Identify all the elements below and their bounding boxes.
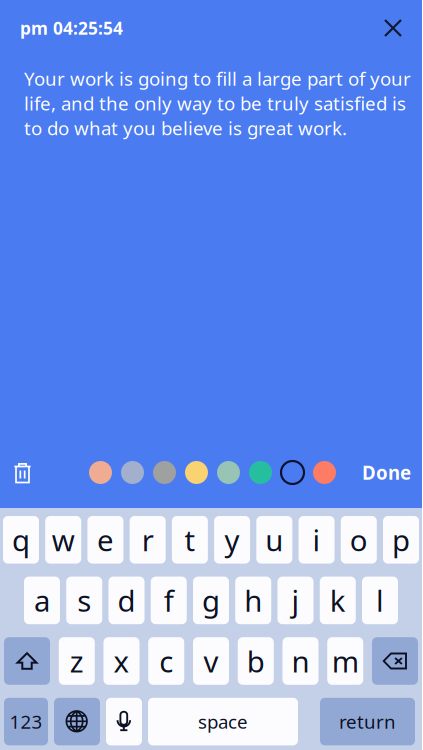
staticText: Your work is going to fill a large part …: [24, 66, 411, 140]
staticText: q: [12, 520, 30, 559]
button[interactable]: v: [193, 637, 229, 685]
staticText: h: [244, 581, 262, 620]
button[interactable]: d: [108, 577, 144, 624]
staticText: l: [376, 581, 384, 620]
staticText: o: [350, 520, 368, 559]
staticText: j: [291, 581, 299, 620]
staticText: z: [70, 641, 84, 680]
button[interactable]: w: [45, 516, 81, 564]
staticText: r: [142, 520, 154, 559]
button[interactable]: a: [24, 577, 60, 624]
button[interactable]: b: [238, 637, 274, 685]
staticText: i: [313, 520, 321, 559]
staticText: return: [339, 709, 396, 734]
button[interactable]: Colour 3: [153, 454, 176, 490]
button[interactable]: k: [320, 577, 356, 624]
staticText: y: [225, 520, 240, 559]
button[interactable]: h: [235, 577, 271, 624]
button[interactable]: Done: [362, 450, 411, 494]
button[interactable]: t: [172, 516, 208, 564]
staticText: 123: [9, 709, 42, 734]
staticText: d: [117, 581, 135, 620]
button[interactable]: r: [130, 516, 166, 564]
button[interactable]: Close: [371, 6, 415, 50]
button[interactable]: l: [362, 577, 398, 624]
staticText: s: [77, 581, 91, 620]
button[interactable]: z: [59, 637, 95, 685]
button[interactable]: return: [320, 698, 415, 745]
staticText: f: [164, 581, 174, 620]
button[interactable]: x: [103, 637, 139, 685]
button[interactable]: s: [66, 577, 102, 624]
staticText: g: [202, 581, 220, 620]
staticText: k: [330, 581, 346, 620]
button[interactable]: q: [3, 516, 39, 564]
staticText: a: [34, 581, 50, 620]
button[interactable]: m: [327, 637, 363, 685]
staticText: t: [184, 520, 195, 559]
button[interactable]: f: [151, 577, 187, 624]
button[interactable]: g: [193, 577, 229, 624]
button[interactable]: o: [341, 516, 377, 564]
button[interactable]: p: [383, 516, 419, 564]
staticText: b: [247, 641, 265, 680]
button[interactable]: Colour 2: [121, 454, 144, 490]
button[interactable]: u: [256, 516, 292, 564]
button[interactable]: Delete note: [1, 450, 44, 494]
button[interactable]: Shift: [4, 637, 50, 685]
button[interactable]: e: [87, 516, 123, 564]
staticText: n: [291, 641, 309, 680]
staticText: u: [265, 520, 283, 559]
button[interactable]: c: [148, 637, 184, 685]
button[interactable]: 123: [4, 698, 48, 745]
staticText: v: [203, 641, 218, 680]
staticText: e: [97, 520, 114, 559]
button[interactable]: Next keyboard: [54, 698, 100, 745]
staticText: Done: [362, 460, 411, 485]
button[interactable]: Delete: [372, 637, 418, 685]
button[interactable]: Colour 1: [89, 454, 112, 490]
button[interactable]: i: [299, 516, 335, 564]
button[interactable]: Colour 5: [217, 454, 240, 490]
button[interactable]: space: [148, 698, 298, 745]
staticText: space: [198, 709, 248, 734]
staticText: pm 04:25:54: [20, 16, 123, 39]
button[interactable]: Colour 6: [249, 454, 272, 490]
button[interactable]: n: [282, 637, 318, 685]
button[interactable]: y: [214, 516, 250, 564]
staticText: x: [113, 641, 129, 680]
staticText: c: [159, 641, 173, 680]
button[interactable]: Colour 8: [313, 454, 336, 490]
staticText: p: [392, 520, 410, 559]
staticText: w: [52, 520, 75, 559]
staticText: m: [332, 641, 359, 680]
button[interactable]: Colour 4: [185, 454, 208, 490]
button[interactable]: j: [277, 577, 313, 624]
button[interactable]: Dictate: [106, 698, 142, 745]
button[interactable]: Colour 7: [281, 454, 304, 490]
